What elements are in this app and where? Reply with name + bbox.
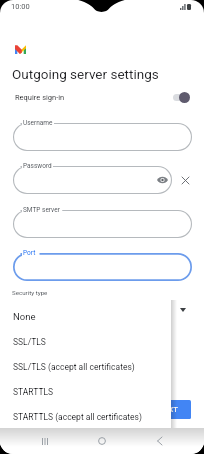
staticText: Port: [23, 249, 36, 257]
button[interactable]: SMTP server: [13, 210, 192, 238]
staticText: NEXT: [159, 405, 178, 414]
staticText: None: [13, 311, 36, 322]
button[interactable]: Require sign-in: [0, 87, 204, 107]
button[interactable]: Port: [13, 253, 192, 281]
staticText: Username: [23, 119, 53, 127]
button[interactable]: Show password: [13, 166, 172, 194]
button[interactable]: SSL/TLS (accept all certificates): [6, 354, 171, 379]
staticText: STARTTLS (accept all certificates): [13, 412, 142, 422]
button[interactable]: STARTTLS: [6, 379, 171, 404]
button[interactable]: STARTTLS (accept all certificates): [6, 404, 171, 429]
staticText: SSL/TLS: [13, 337, 46, 347]
button[interactable]: Recents: [34, 430, 56, 452]
button[interactable]: None: [6, 304, 171, 329]
staticText: 10:00: [11, 2, 30, 11]
button[interactable]: Security type dropdown: [175, 302, 191, 318]
button[interactable]: Back: [148, 430, 170, 452]
staticText: SSL/TLS (accept all certificates): [13, 362, 135, 372]
button[interactable]: Show password: [155, 173, 169, 187]
staticText: SMTP server: [23, 206, 60, 214]
staticText: STARTTLS: [13, 387, 54, 397]
button[interactable]: SSL/TLS: [6, 329, 171, 354]
staticText: Outgoing server settings: [12, 66, 159, 82]
staticText: Password: [23, 162, 52, 170]
button[interactable]: Clear: [177, 172, 193, 188]
button[interactable]: NEXT: [146, 400, 191, 419]
staticText: Security type: [12, 289, 48, 296]
button[interactable]: Username: [13, 123, 192, 151]
staticText: Require sign-in: [15, 93, 65, 102]
button[interactable]: Home: [91, 430, 113, 452]
